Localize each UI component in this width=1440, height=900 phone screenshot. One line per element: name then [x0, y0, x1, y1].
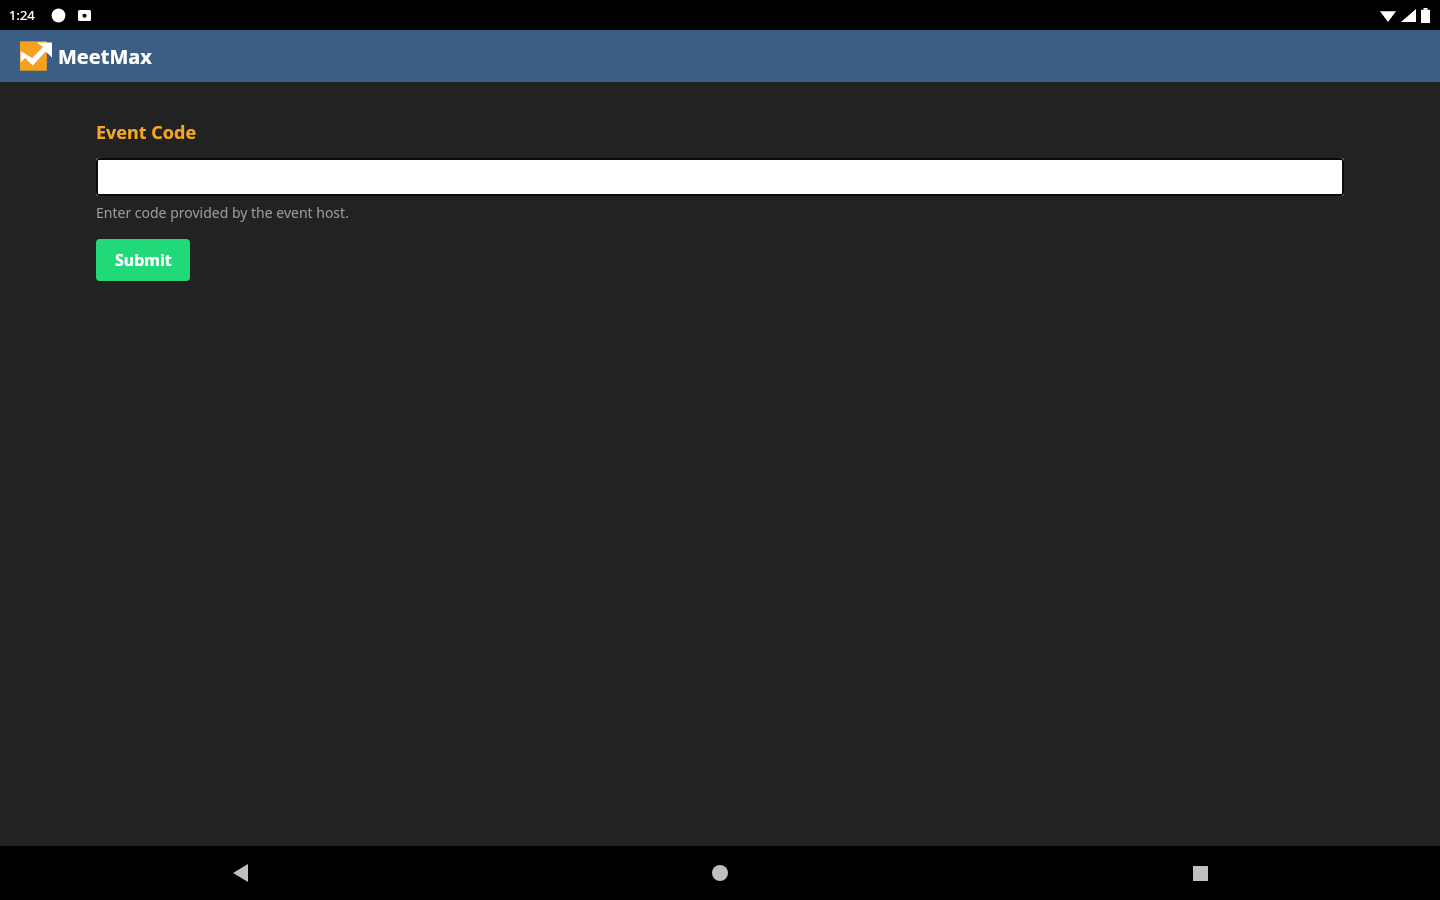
button[interactable]: Submit: [96, 239, 190, 281]
staticText: Event Code: [96, 120, 197, 145]
button[interactable]: Recent apps: [960, 846, 1440, 900]
staticText: MeetMax: [58, 43, 152, 70]
button[interactable]: MeetMax home: [20, 40, 152, 72]
button[interactable]: Event code input: [96, 158, 1344, 196]
button[interactable]: Back: [0, 846, 480, 900]
staticText: Enter code provided by the event host.: [96, 203, 349, 222]
staticText: Submit: [115, 249, 172, 271]
staticText: 1:24: [9, 6, 35, 24]
button[interactable]: Home: [480, 846, 960, 900]
